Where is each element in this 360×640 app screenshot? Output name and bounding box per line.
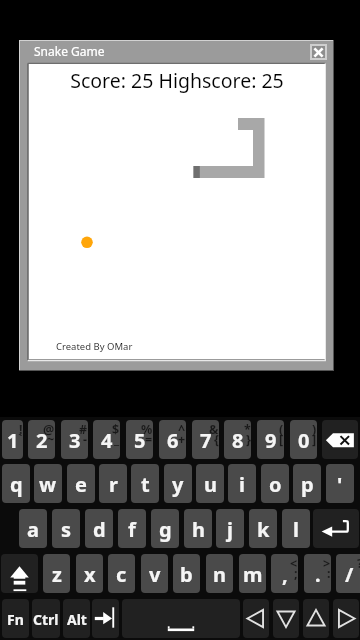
button[interactable]: a xyxy=(19,509,47,548)
button[interactable]: u xyxy=(196,464,224,503)
staticText: 0 xyxy=(298,427,310,454)
staticText: 8 xyxy=(232,427,244,454)
staticText: x xyxy=(84,561,96,588)
button[interactable]: z xyxy=(43,554,70,593)
staticText: n xyxy=(213,561,226,588)
staticText: - xyxy=(83,431,88,448)
staticText: [ xyxy=(279,431,284,448)
button[interactable]: w xyxy=(34,464,62,503)
button[interactable]: Enter xyxy=(313,509,359,548)
button[interactable]: Shift xyxy=(1,554,38,593)
staticText: ' xyxy=(337,471,343,498)
button[interactable]: Fn xyxy=(2,599,29,638)
staticText: 6 xyxy=(167,427,179,454)
staticText: f xyxy=(128,516,136,543)
staticText: k xyxy=(257,516,270,543)
staticText: & xyxy=(209,421,219,438)
staticText: b xyxy=(180,561,193,588)
button[interactable]: d xyxy=(85,509,113,548)
button[interactable]: f xyxy=(118,509,146,548)
staticText: / xyxy=(345,561,354,588)
staticText: _ xyxy=(114,431,120,448)
button[interactable]: Up xyxy=(303,599,329,638)
staticText: Score: 25 Highscore: 25 xyxy=(29,67,325,94)
staticText: 9 xyxy=(265,427,277,454)
button[interactable]: . xyxy=(304,554,331,593)
button[interactable]: x xyxy=(76,554,103,593)
staticText: * xyxy=(244,421,251,438)
button[interactable]: Backspace xyxy=(322,420,358,459)
staticText: w xyxy=(39,471,57,498)
button[interactable]: g xyxy=(151,509,179,548)
button[interactable]: t xyxy=(131,464,159,503)
button[interactable]: o xyxy=(261,464,289,503)
staticText: { xyxy=(214,431,219,448)
button[interactable]: k xyxy=(249,509,277,548)
button[interactable]: m xyxy=(239,554,266,593)
button[interactable]: b xyxy=(173,554,200,593)
button[interactable]: v xyxy=(141,554,168,593)
staticText: 5 xyxy=(134,427,146,454)
staticText: y xyxy=(172,471,184,498)
staticText: ~ xyxy=(47,431,55,448)
button[interactable]: h xyxy=(184,509,212,548)
staticText: ` xyxy=(18,431,23,448)
button[interactable]: 2 xyxy=(28,420,55,459)
staticText: ^ xyxy=(178,421,186,438)
staticText: h xyxy=(192,516,205,543)
button[interactable]: 3 xyxy=(61,420,88,459)
button[interactable]: Tab xyxy=(92,599,119,638)
staticText: l xyxy=(293,516,299,543)
staticText: t xyxy=(141,471,150,498)
button[interactable]: / xyxy=(336,554,360,593)
button[interactable]: n xyxy=(206,554,233,593)
button[interactable]: 4 xyxy=(93,420,120,459)
button[interactable]: Left xyxy=(243,599,269,638)
staticText: @ xyxy=(43,421,55,438)
button[interactable]: c xyxy=(108,554,135,593)
button[interactable]: 8 xyxy=(224,420,251,459)
button[interactable]: , xyxy=(271,554,298,593)
button[interactable]: 5 xyxy=(126,420,153,459)
button[interactable]: y xyxy=(164,464,192,503)
button[interactable]: l xyxy=(282,509,310,548)
button[interactable]: 9 xyxy=(257,420,284,459)
button[interactable]: r xyxy=(99,464,127,503)
button[interactable]: j xyxy=(216,509,244,548)
button[interactable]: Alt xyxy=(63,599,90,638)
staticText: : xyxy=(327,565,331,582)
staticText: m xyxy=(243,561,263,588)
button[interactable]: 7 xyxy=(192,420,219,459)
staticText: 1 xyxy=(7,427,19,454)
button[interactable]: 1 xyxy=(2,420,23,459)
staticText: j xyxy=(227,516,233,543)
button[interactable]: 6 xyxy=(159,420,186,459)
staticText: p xyxy=(301,471,314,498)
button[interactable]: ' xyxy=(326,464,354,503)
staticText: $ xyxy=(112,421,120,438)
button[interactable]: Down xyxy=(273,599,299,638)
button[interactable]: e xyxy=(67,464,95,503)
staticText: o xyxy=(269,471,282,498)
staticText: i xyxy=(239,471,245,498)
staticText: . xyxy=(315,561,321,588)
staticText: e xyxy=(75,471,87,498)
button[interactable]: 0 xyxy=(290,420,317,459)
button[interactable]: i xyxy=(228,464,256,503)
staticText: ! xyxy=(19,421,23,438)
button[interactable]: Space xyxy=(122,599,240,638)
staticText: ( xyxy=(279,421,284,438)
staticText: d xyxy=(93,516,106,543)
staticText: r xyxy=(109,471,118,498)
staticText: q xyxy=(10,471,23,498)
button[interactable]: p xyxy=(293,464,321,503)
staticText: u xyxy=(204,471,217,498)
button[interactable]: Close xyxy=(310,44,327,60)
button[interactable]: q xyxy=(2,464,30,503)
button[interactable]: s xyxy=(52,509,80,548)
staticText: > xyxy=(323,555,331,572)
staticText: c xyxy=(116,561,127,588)
button[interactable]: Right xyxy=(333,599,359,638)
staticText: v xyxy=(149,561,161,588)
button[interactable]: Ctrl xyxy=(32,599,60,638)
